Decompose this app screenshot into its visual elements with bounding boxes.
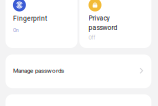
button[interactable]: Privacy bbox=[79, 0, 151, 48]
button[interactable]: Fingerprint bbox=[5, 0, 77, 48]
button[interactable]: Manage passwords bbox=[5, 54, 151, 88]
staticText: Fingerprint bbox=[13, 14, 47, 22]
staticText: password bbox=[88, 24, 117, 32]
staticText: Off bbox=[88, 35, 95, 41]
staticText: On bbox=[13, 28, 19, 33]
staticText: Manage passwords bbox=[13, 67, 64, 74]
staticText: Privacy bbox=[88, 14, 109, 22]
